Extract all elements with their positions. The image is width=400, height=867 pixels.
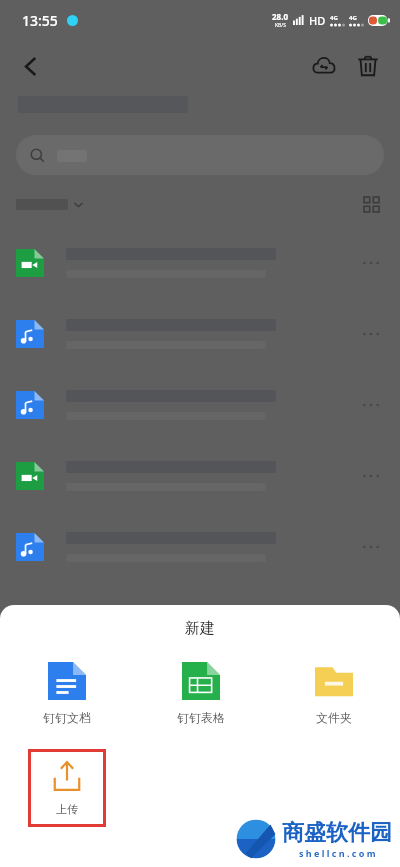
button[interactable]	[16, 199, 84, 210]
button[interactable]: 钉钉表格	[134, 662, 267, 725]
button[interactable]: More options	[0, 369, 400, 440]
button[interactable]: More options	[358, 463, 384, 489]
staticText: 13:55	[22, 11, 58, 30]
button[interactable]: Delete	[350, 48, 386, 84]
button[interactable]: More options	[0, 440, 400, 511]
button[interactable]: More options	[358, 392, 384, 418]
button[interactable]: More options	[0, 511, 400, 582]
button[interactable]: Back	[14, 49, 48, 83]
button[interactable]: More options	[358, 321, 384, 347]
button[interactable]: More options	[0, 298, 400, 369]
staticText: 28.0	[272, 11, 288, 22]
staticText: 文件夹	[316, 710, 352, 725]
staticText: 4G	[330, 14, 338, 22]
staticText: 商盛软件园	[282, 819, 392, 847]
button[interactable]: Grid view	[358, 191, 384, 217]
button[interactable]: 上传	[28, 749, 106, 827]
staticText: s h e l l c n . c o m	[299, 847, 376, 859]
staticText: 新建	[0, 619, 400, 638]
button[interactable]: 文件夹	[267, 662, 400, 725]
button[interactable]: More options	[358, 534, 384, 560]
button[interactable]: 钉钉文档	[0, 662, 134, 725]
button[interactable]: More options	[358, 250, 384, 276]
staticText: 钉钉文档	[43, 710, 91, 725]
button[interactable]: More options	[0, 227, 400, 298]
staticText: 4G	[349, 14, 357, 22]
staticText: KB/S	[275, 22, 286, 29]
staticText: HD	[309, 13, 326, 28]
button[interactable]: Sync	[306, 48, 342, 84]
staticText: 上传	[56, 802, 78, 816]
button[interactable]	[16, 135, 384, 175]
staticText: 钉钉表格	[177, 710, 225, 725]
